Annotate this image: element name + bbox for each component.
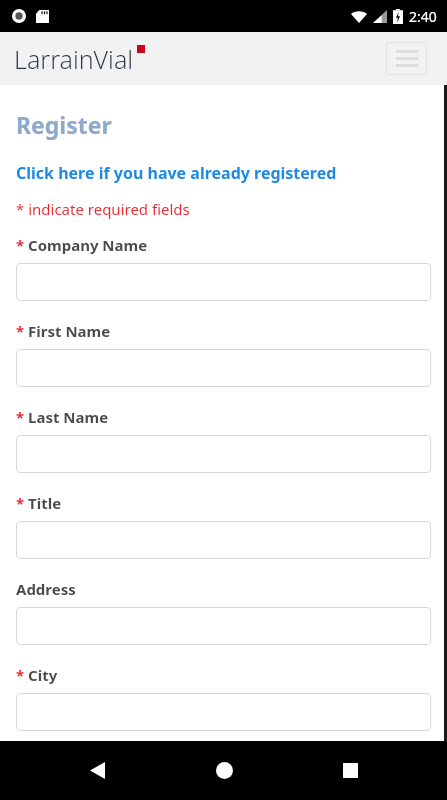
button[interactable]: Back — [67, 741, 127, 800]
button[interactable]: Open navigation menu — [386, 42, 427, 75]
staticText: * First Name — [16, 321, 111, 341]
staticText: LarrainVial — [14, 42, 134, 76]
button[interactable]: Click here if you have already registere… — [16, 162, 337, 184]
button[interactable]: City input field — [16, 693, 431, 731]
staticText: 2:40 — [409, 7, 437, 26]
button[interactable]: Register — [16, 109, 112, 140]
button[interactable]: Last Name input field — [16, 435, 431, 473]
staticText: Address — [16, 579, 76, 599]
button[interactable]: Title input field — [16, 521, 431, 559]
button[interactable]: First Name input field — [16, 349, 431, 387]
staticText: * Last Name — [16, 407, 109, 427]
button[interactable]: Address input field — [16, 607, 431, 645]
staticText: * City — [16, 665, 58, 685]
button[interactable]: Recent apps — [320, 741, 380, 800]
staticText: * Company Name — [16, 235, 148, 255]
button[interactable]: Home — [194, 741, 254, 800]
staticText: * indicate required fields — [16, 199, 190, 219]
button[interactable]: LarrainVial — [14, 42, 145, 76]
button[interactable]: Company Name input field — [16, 263, 431, 301]
staticText: * Title — [16, 493, 62, 513]
